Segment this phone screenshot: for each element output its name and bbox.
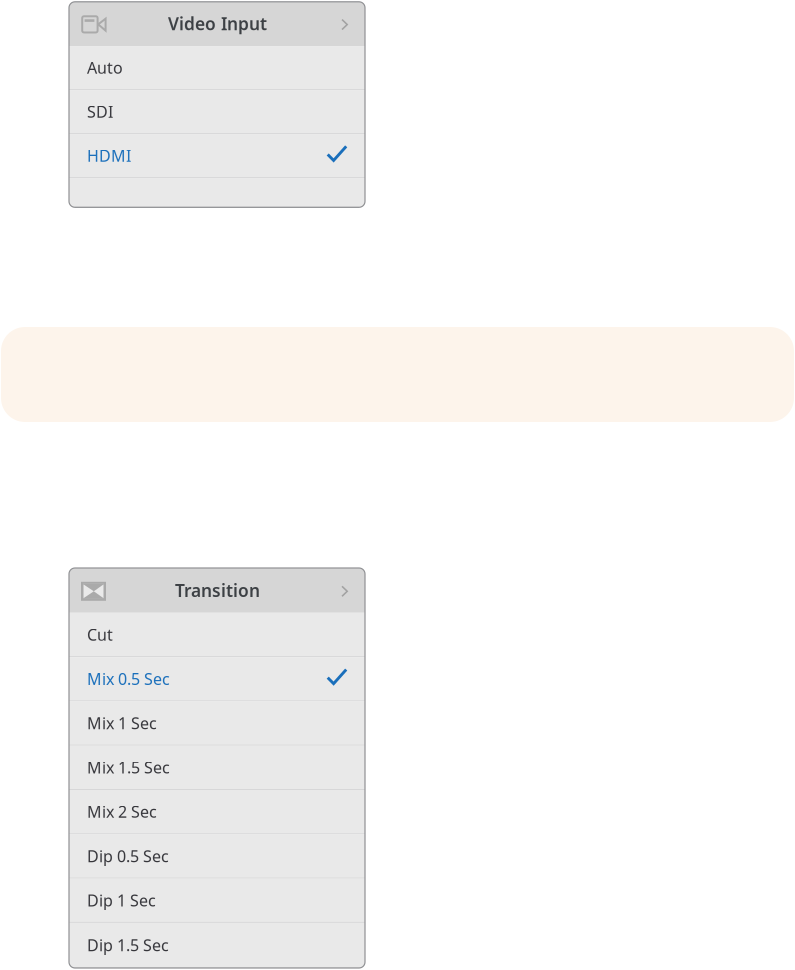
button[interactable]: Dip 0.5 Sec (69, 834, 365, 879)
staticText: Video Input (168, 12, 267, 35)
staticText: Mix 0.5 Sec (87, 668, 170, 689)
staticText: Auto (87, 57, 123, 78)
button[interactable]: Mix 1.5 Sec (69, 746, 365, 790)
staticText: Dip 1 Sec (87, 890, 156, 911)
button[interactable]: Dip 1 Sec (69, 879, 365, 923)
staticText: Dip 1.5 Sec (87, 934, 169, 956)
button[interactable]: Cut (69, 613, 365, 657)
staticText: HDMI (87, 145, 131, 166)
button[interactable]: SDI (69, 90, 365, 134)
staticText: Mix 2 Sec (87, 801, 157, 822)
staticText: Cut (87, 624, 113, 645)
staticText: Transition (175, 579, 260, 602)
staticText: Mix 1.5 Sec (87, 757, 170, 778)
button[interactable]: Mix 0.5 Sec (69, 657, 365, 701)
button[interactable]: Transition (69, 568, 365, 613)
button[interactable]: Dip 1.5 Sec (69, 923, 365, 968)
button[interactable]: Mix 2 Sec (69, 790, 365, 834)
staticText: Dip 0.5 Sec (87, 845, 169, 866)
button[interactable]: Video Input (69, 1, 365, 46)
button[interactable]: Mix 1 Sec (69, 701, 365, 746)
staticText: SDI (87, 101, 113, 122)
button[interactable]: Auto (69, 46, 365, 90)
button[interactable]: HDMI (69, 134, 365, 178)
staticText: Mix 1 Sec (87, 712, 157, 734)
